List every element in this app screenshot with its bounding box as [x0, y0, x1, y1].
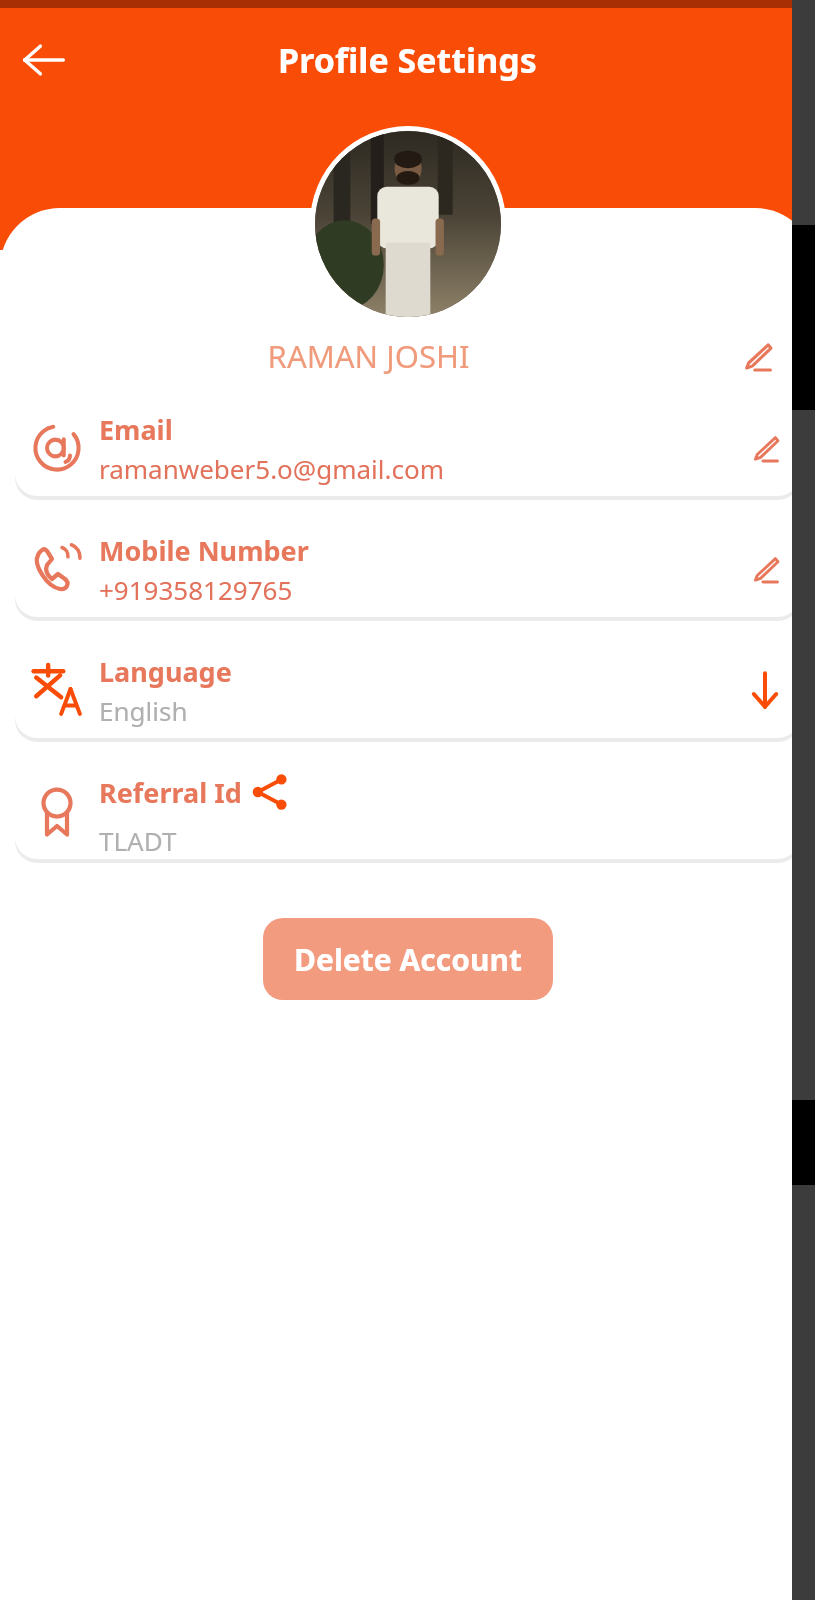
staticText: Referral Id — [99, 774, 242, 811]
button[interactable]: Change language — [730, 655, 800, 725]
staticText: Delete Account — [294, 939, 522, 980]
button[interactable]: Edit email — [730, 413, 800, 483]
button[interactable]: Delete Account — [263, 918, 553, 1000]
button[interactable]: Back — [8, 24, 80, 96]
button[interactable]: Email — [15, 400, 800, 496]
staticText: +919358129765 — [99, 572, 293, 607]
button[interactable]: RAMAN JOSHI — [0, 322, 815, 390]
staticText: Profile Settings — [278, 37, 537, 83]
staticText: English — [99, 693, 188, 728]
other: Edit name — [721, 322, 793, 390]
staticText: RAMAN JOSHI — [16, 335, 721, 377]
button[interactable]: Language — [15, 642, 800, 738]
button[interactable]: Profile photo — [315, 131, 501, 317]
button[interactable]: Share referral id — [242, 764, 298, 820]
staticText: Email — [99, 411, 173, 448]
button[interactable]: Edit mobile number — [730, 534, 800, 604]
staticText: TLADT — [99, 823, 177, 858]
button[interactable]: Referral Id — [15, 763, 800, 859]
staticText: Mobile Number — [99, 532, 309, 569]
button[interactable]: Mobile Number — [15, 521, 800, 617]
staticText: Language — [99, 653, 232, 690]
staticText: ramanweber5.o@gmail.com — [99, 451, 444, 486]
